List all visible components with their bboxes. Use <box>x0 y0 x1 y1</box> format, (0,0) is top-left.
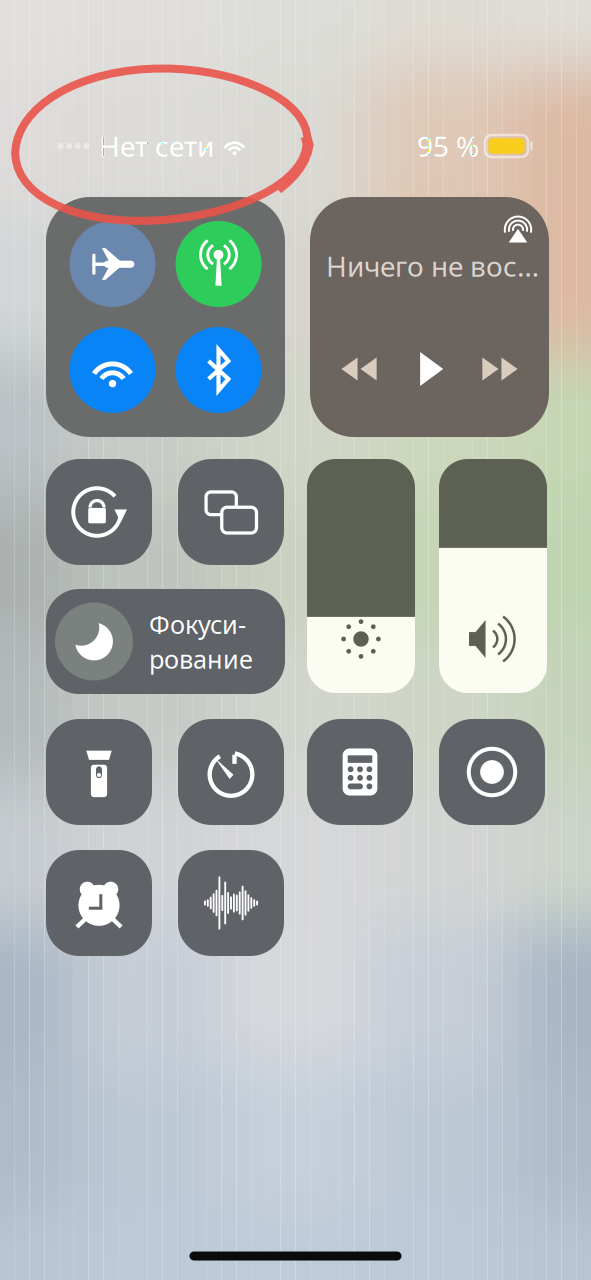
button[interactable]: Громкость <box>439 459 547 693</box>
button[interactable]: Вперед <box>482 351 518 387</box>
button[interactable]: Будильник <box>46 850 152 956</box>
button[interactable]: Запись экрана <box>439 719 545 825</box>
button[interactable]: Повтор экрана <box>178 459 284 565</box>
button[interactable]: Таймер <box>178 719 284 825</box>
button[interactable]: Сотовые данные <box>175 221 261 307</box>
button[interactable]: Авиарежим <box>69 221 155 307</box>
button[interactable]: Яркость <box>307 459 415 693</box>
button[interactable]: Воспроизвести <box>411 351 447 387</box>
button[interactable]: AirPlay <box>495 205 540 250</box>
staticText: Нет сети <box>99 127 214 165</box>
staticText: рование <box>149 642 253 676</box>
button[interactable]: Фонарик <box>46 719 152 825</box>
button[interactable]: Калькулятор <box>307 719 413 825</box>
staticText: 95 % <box>417 127 479 165</box>
button[interactable]: Назад <box>341 351 377 387</box>
button[interactable]: Bluetooth <box>175 327 261 413</box>
button[interactable]: Диктофон <box>178 850 284 956</box>
button[interactable]: Фокусирование <box>46 589 285 694</box>
staticText: Фокуси- <box>149 607 246 641</box>
button[interactable]: Блокировка ориентации <box>46 459 152 565</box>
staticText: Ничего не вос… <box>326 247 539 285</box>
button[interactable]: Wi-Fi <box>69 327 155 413</box>
